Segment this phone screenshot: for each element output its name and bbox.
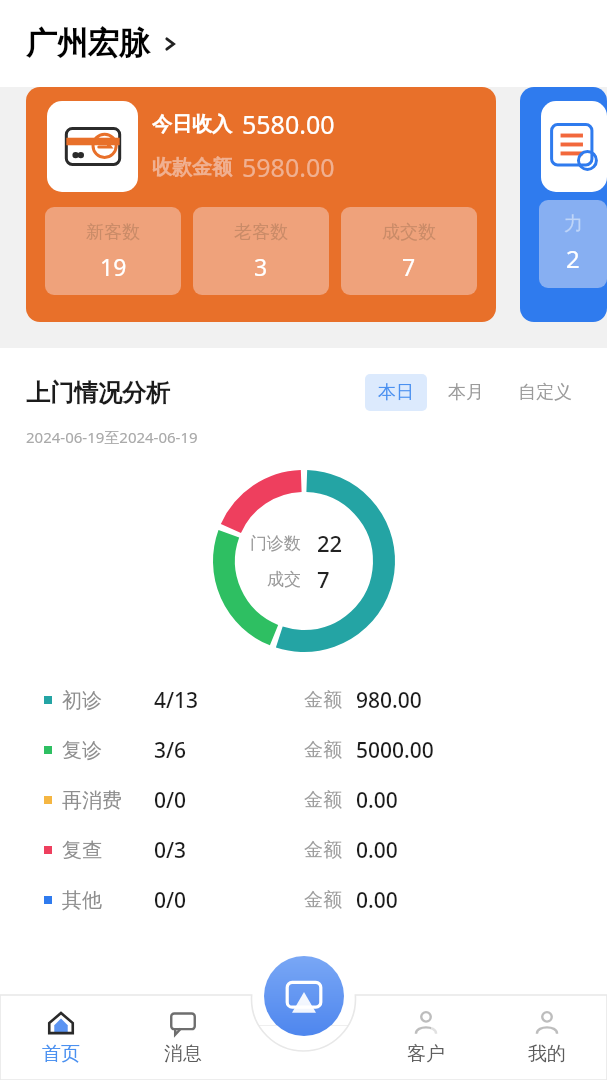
button[interactable]: 本月	[435, 374, 497, 411]
staticText: 上门情况分析	[26, 378, 170, 408]
staticText: 金额	[304, 838, 342, 862]
staticText: 金额	[304, 888, 342, 912]
button[interactable]: 再消费	[0, 775, 607, 825]
staticText: 5000.00	[356, 736, 434, 765]
staticText: 金额	[304, 688, 342, 712]
staticText: 门诊数	[250, 533, 301, 554]
staticText: 5980.00	[242, 150, 335, 184]
button[interactable]: 广州宏脉	[0, 0, 607, 87]
staticText: 今日收入	[152, 112, 232, 137]
staticText: 2024-06-19至2024-06-19	[26, 427, 198, 447]
staticText: 成交数	[382, 221, 436, 244]
staticText: 4/13	[154, 686, 199, 715]
staticText: 老客数	[234, 221, 288, 244]
staticText: 3/6	[154, 736, 187, 765]
staticText: 初诊	[62, 688, 102, 713]
staticText: 其他	[62, 888, 102, 913]
button[interactable]: 我的	[486, 995, 607, 1080]
staticText: 复查	[62, 838, 102, 863]
button[interactable]: 今日收入	[26, 87, 496, 322]
staticText: 复诊	[62, 738, 102, 763]
staticText: 5580.00	[242, 107, 335, 141]
staticText: 19	[100, 251, 127, 282]
staticText: 自定义	[518, 381, 572, 404]
button[interactable]: 新客数	[45, 207, 181, 295]
staticText: 7	[402, 251, 416, 282]
staticText: 2	[566, 242, 580, 275]
button[interactable]: 复诊	[0, 725, 607, 775]
button[interactable]: 消息	[122, 995, 244, 1080]
staticText: 本月	[448, 381, 484, 404]
staticText: 再消费	[62, 788, 122, 813]
button[interactable]: 初诊	[0, 675, 607, 725]
staticText: 客户	[407, 1042, 445, 1066]
staticText: 3	[254, 251, 268, 282]
button[interactable]: 其他	[0, 875, 607, 925]
button[interactable]: 复查	[0, 825, 607, 875]
staticText: 收款金额	[152, 155, 232, 180]
staticText: 首页	[42, 1042, 80, 1066]
staticText: 0/0	[154, 886, 187, 915]
staticText: 广州宏脉	[26, 24, 150, 63]
staticText: 成交	[267, 569, 301, 590]
staticText: 0.00	[356, 786, 398, 815]
staticText: 7	[317, 564, 330, 594]
staticText: 消息	[164, 1042, 202, 1066]
staticText: 22	[317, 528, 343, 558]
button[interactable]: 力	[520, 87, 607, 322]
staticText: 0.00	[356, 836, 398, 865]
staticText: 新客数	[86, 221, 140, 244]
button[interactable]: 老客数	[193, 207, 329, 295]
button[interactable]: 扫描	[264, 956, 344, 1036]
button[interactable]: 本日	[365, 374, 427, 411]
button[interactable]: 客户	[365, 995, 486, 1080]
staticText: 金额	[304, 738, 342, 762]
staticText: 我的	[528, 1042, 566, 1066]
staticText: 查看详情	[26, 1041, 106, 1066]
staticText: 0.00	[356, 886, 398, 915]
button[interactable]: 自定义	[505, 374, 585, 411]
button[interactable]: 查看详情	[0, 1026, 607, 1080]
staticText: 力	[564, 212, 583, 236]
staticText: 0/0	[154, 786, 187, 815]
staticText: 980.00	[356, 686, 422, 715]
staticText: 金额	[304, 788, 342, 812]
button[interactable]: 首页	[0, 995, 122, 1080]
button[interactable]: 成交数	[341, 207, 477, 295]
staticText: 本日	[378, 381, 414, 404]
staticText: 0/3	[154, 836, 187, 865]
